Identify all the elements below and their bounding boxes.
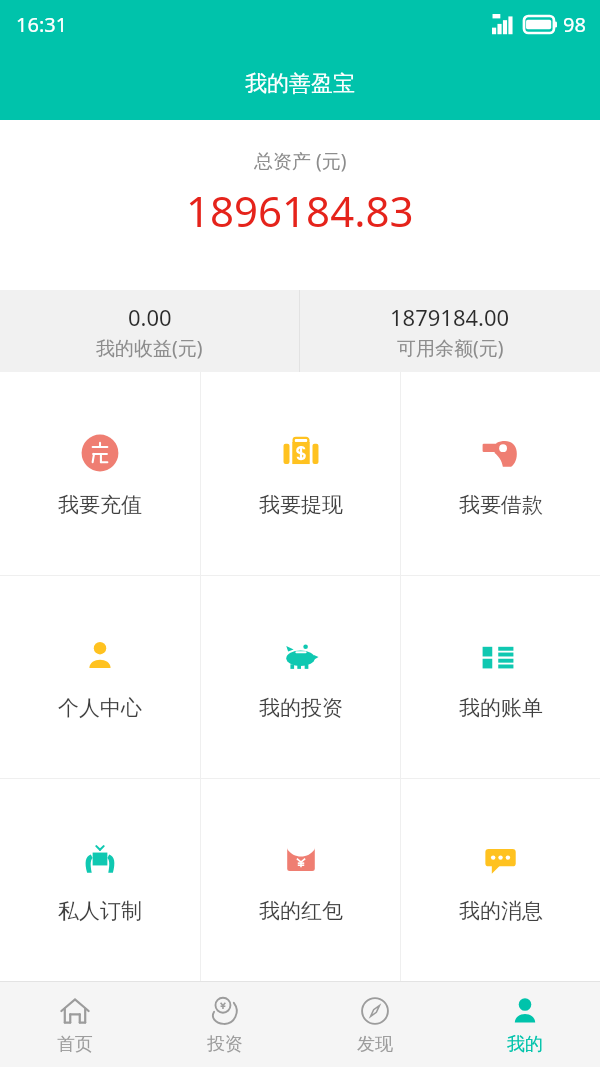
button[interactable]: 我的消息 [401,779,600,981]
button[interactable]: 我的 [450,982,600,1067]
button[interactable]: 投资 [150,982,300,1067]
staticText: 0.00 [128,302,172,332]
button[interactable]: 0.00 [0,290,299,372]
staticText: 1896184.83 [186,182,414,239]
staticText: 我的善盈宝 [245,70,355,98]
staticText: 我的账单 [459,695,543,721]
staticText: 我的投资 [259,695,343,721]
staticText: 发现 [357,1033,393,1056]
button[interactable]: 我的投资 [201,576,400,778]
button[interactable]: 我的红包 [201,779,400,981]
staticText: 可用余额(元) [397,335,504,361]
button[interactable]: 个人中心 [0,576,200,778]
staticText: 私人订制 [58,898,142,924]
staticText: 首页 [57,1033,93,1056]
staticText: 1879184.00 [390,302,510,332]
staticText: 我的消息 [459,898,543,924]
staticText: 我要提现 [259,492,343,518]
button[interactable]: 我要提现 [201,372,400,575]
staticText: 我要充值 [58,492,142,518]
staticText: 16:31 [16,11,68,38]
staticText: 总资产 (元) [254,148,347,174]
button[interactable]: 我的账单 [401,576,600,778]
button[interactable]: 1879184.00 [300,290,600,372]
staticText: 个人中心 [58,695,142,721]
staticText: 我的红包 [259,898,343,924]
staticText: 我的收益(元) [96,335,203,361]
staticText: 投资 [207,1033,243,1056]
button[interactable]: 我要充值 [0,372,200,575]
staticText: 我的 [507,1033,543,1056]
button[interactable]: 私人订制 [0,779,200,981]
button[interactable]: 发现 [300,982,450,1067]
staticText: 98 [563,11,586,38]
staticText: 我要借款 [459,492,543,518]
button[interactable]: 首页 [0,982,150,1067]
button[interactable]: 我要借款 [401,372,600,575]
